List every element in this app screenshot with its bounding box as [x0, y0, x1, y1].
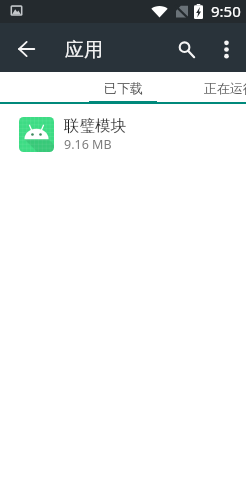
- button[interactable]: Search: [166, 28, 206, 68]
- staticText: 应用: [65, 38, 103, 62]
- button[interactable]: 正在运行: [157, 72, 246, 104]
- button[interactable]: Back: [4, 26, 48, 70]
- button[interactable]: More options: [206, 28, 246, 68]
- staticText: 9:50: [211, 1, 241, 21]
- staticText: 9.16 MB: [64, 136, 112, 153]
- staticText: 联璧模块: [64, 116, 126, 136]
- staticText: 已下载: [104, 80, 143, 96]
- button[interactable]: 联璧模块: [0, 104, 246, 166]
- staticText: 正在运行: [204, 80, 246, 96]
- button[interactable]: 已下载: [89, 72, 157, 104]
